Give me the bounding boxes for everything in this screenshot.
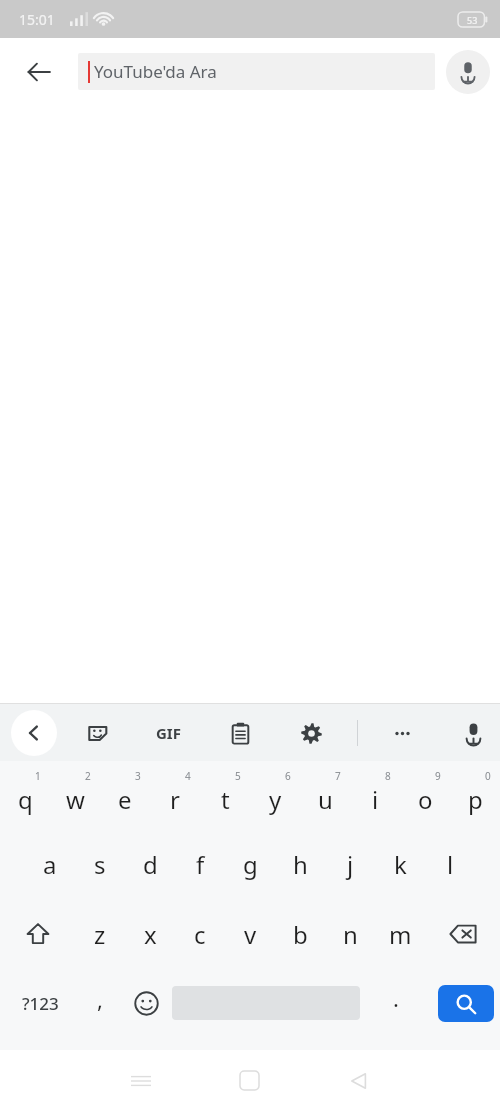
button[interactable]: Search: [438, 985, 494, 1022]
button[interactable]: k: [375, 829, 425, 899]
staticText: f: [196, 848, 205, 881]
button[interactable]: Voice search: [435, 38, 500, 105]
button[interactable]: c: [175, 899, 225, 969]
button[interactable]: .: [360, 969, 432, 1037]
staticText: b: [293, 918, 308, 951]
staticText: ?123: [22, 992, 59, 1015]
button[interactable]: x: [125, 899, 175, 969]
button[interactable]: i: [350, 765, 400, 829]
staticText: 8: [385, 769, 391, 783]
staticText: 4: [185, 769, 191, 783]
button[interactable]: Backspace: [425, 899, 500, 969]
staticText: 1: [35, 769, 41, 783]
staticText: r: [170, 783, 180, 816]
button[interactable]: d: [125, 829, 175, 899]
staticText: g: [243, 848, 258, 881]
staticText: z: [94, 918, 106, 951]
staticText: p: [468, 783, 483, 816]
button[interactable]: y: [250, 765, 300, 829]
staticText: c: [194, 918, 206, 951]
staticText: s: [94, 848, 106, 881]
button[interactable]: f: [175, 829, 225, 899]
button[interactable]: Back: [0, 38, 78, 105]
staticText: 5: [235, 769, 241, 783]
button[interactable]: h: [275, 829, 325, 899]
button[interactable]: b: [275, 899, 325, 969]
staticText: j: [347, 848, 354, 881]
button[interactable]: a: [25, 829, 75, 899]
staticText: 3: [135, 769, 141, 783]
staticText: w: [66, 783, 85, 816]
button[interactable]: j: [325, 829, 375, 899]
button[interactable]: More options: [380, 711, 424, 755]
button[interactable]: YouTube'da Ara: [78, 53, 435, 90]
button[interactable]: Close toolbar: [11, 710, 57, 756]
staticText: o: [418, 783, 433, 816]
staticText: v: [244, 918, 257, 951]
staticText: 6: [285, 769, 291, 783]
staticText: a: [43, 848, 57, 881]
button[interactable]: n: [325, 899, 375, 969]
staticText: GIF: [156, 723, 181, 743]
staticText: e: [118, 783, 132, 816]
staticText: 0: [485, 769, 491, 783]
button[interactable]: Voice input: [451, 711, 495, 755]
button[interactable]: s: [75, 829, 125, 899]
button[interactable]: GIF: [146, 711, 190, 755]
staticText: i: [372, 783, 379, 816]
staticText: YouTube'da Ara: [94, 60, 217, 83]
staticText: h: [293, 848, 308, 881]
button[interactable]: Emoji: [120, 969, 172, 1037]
staticText: ,: [97, 984, 103, 1014]
staticText: t: [221, 783, 230, 816]
button[interactable]: r: [150, 765, 200, 829]
staticText: n: [343, 918, 358, 951]
button[interactable]: Settings: [289, 711, 333, 755]
button[interactable]: m: [375, 899, 425, 969]
button[interactable]: l: [425, 829, 475, 899]
staticText: q: [18, 783, 33, 816]
button[interactable]: e: [100, 765, 150, 829]
button[interactable]: t: [200, 765, 250, 829]
staticText: 9: [435, 769, 441, 783]
button[interactable]: q: [0, 765, 50, 829]
button[interactable]: v: [225, 899, 275, 969]
staticText: .: [393, 983, 399, 1013]
staticText: m: [389, 918, 412, 951]
button[interactable]: ,: [80, 969, 120, 1037]
staticText: x: [144, 918, 157, 951]
staticText: u: [318, 783, 333, 816]
staticText: 53: [467, 14, 478, 26]
button[interactable]: w: [50, 765, 100, 829]
staticText: 15:01: [19, 10, 55, 29]
button[interactable]: Stickers: [76, 711, 120, 755]
button[interactable]: ?123: [0, 969, 80, 1037]
button[interactable]: Back: [304, 1050, 413, 1111]
button[interactable]: Clipboard: [218, 711, 262, 755]
staticText: 2: [85, 769, 91, 783]
button[interactable]: o: [400, 765, 450, 829]
button[interactable]: Recents: [86, 1050, 195, 1111]
button[interactable]: Shift: [0, 899, 75, 969]
staticText: l: [447, 848, 454, 881]
staticText: y: [269, 783, 282, 816]
button[interactable]: u: [300, 765, 350, 829]
button[interactable]: p: [450, 765, 500, 829]
button[interactable]: z: [75, 899, 125, 969]
staticText: 7: [335, 769, 341, 783]
staticText: d: [143, 848, 158, 881]
button[interactable]: g: [225, 829, 275, 899]
button[interactable]: Home: [195, 1050, 304, 1111]
staticText: k: [394, 848, 407, 881]
